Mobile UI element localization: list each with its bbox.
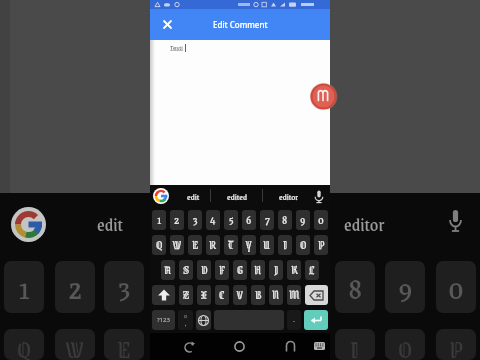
button[interactable]: 6 [242,210,256,230]
button[interactable]: editor [265,185,313,207]
button[interactable]: Y [242,235,256,255]
staticText: Z [183,286,190,304]
button[interactable]: 3 [188,210,202,230]
staticText: V [237,286,243,304]
staticText: 2 [68,263,83,312]
staticText: Q [156,236,163,254]
button[interactable]: K [287,260,301,280]
button[interactable]: edited [213,185,261,207]
button[interactable]: 9 [296,210,310,230]
button[interactable]: 0 [314,210,328,230]
button[interactable]: R [206,235,220,255]
button[interactable] [196,310,211,330]
button[interactable]: O [296,235,310,255]
staticText: 3 [193,211,198,229]
staticText: , [185,320,187,328]
button[interactable]: . [287,310,301,330]
button[interactable]: V [233,285,247,305]
button[interactable]: H [251,260,265,280]
button[interactable]: M [287,285,301,305]
staticText: W [173,236,182,254]
button[interactable]: 4 [206,210,220,230]
button[interactable]: Q [152,235,166,255]
button[interactable] [314,342,325,350]
staticText: 7 [265,211,270,229]
button[interactable]: E [188,235,202,255]
button[interactable]: A [161,260,175,280]
staticText: P [449,329,463,360]
staticText: 5 [229,211,234,229]
staticText: J [274,261,279,279]
staticText: T [228,236,234,254]
staticText: Y [246,236,252,254]
staticText: W [66,329,84,360]
staticText: Q [17,329,32,360]
staticText: Edit Comment [213,19,268,30]
button[interactable] [152,285,175,305]
staticText: N [272,286,280,304]
staticText: edit [187,190,200,203]
staticText: R [209,236,217,254]
button[interactable] [304,310,328,330]
staticText: L [309,261,315,279]
staticText: 0 [448,263,464,312]
button[interactable]: B [251,285,265,305]
button[interactable]: D [197,260,211,280]
button[interactable]: G [233,260,247,280]
button[interactable]: 1 [152,210,166,230]
button[interactable] [305,285,328,305]
button[interactable] [310,83,330,110]
button[interactable]: I [278,235,292,255]
staticText: O [398,329,413,360]
button[interactable]: Z [179,285,193,305]
staticText: Testi [170,44,183,52]
button[interactable]: S [179,260,193,280]
button[interactable]: J [269,260,283,280]
staticText: E [192,236,199,254]
staticText: P [318,236,325,254]
button[interactable] [163,20,172,29]
staticText: I [350,329,360,360]
button[interactable]: 7 [260,210,274,230]
staticText: 1 [157,211,162,229]
button[interactable]: o [178,310,193,330]
staticText: A [164,261,172,279]
button[interactable]: 2 [170,210,184,230]
staticText: E [117,329,131,360]
button[interactable]: 8 [278,210,292,230]
staticText: I [283,236,288,254]
staticText: S [183,261,190,279]
staticText: 9 [300,211,306,229]
staticText: 8 [348,263,363,312]
staticText: ?123 [157,316,170,324]
button[interactable] [285,341,296,352]
button[interactable]: 5 [224,210,238,230]
staticText: U [263,236,271,254]
button[interactable] [234,341,245,352]
staticText: 9 [398,263,413,312]
staticText: 2 [174,211,180,229]
button[interactable]: T [224,235,238,255]
staticText: C [219,286,225,304]
button[interactable]: P [314,235,328,255]
button[interactable]: N [269,285,283,305]
button[interactable]: W [170,235,184,255]
button[interactable]: U [260,235,274,255]
button[interactable]: C [215,285,229,305]
button[interactable]: X [197,285,211,305]
staticText: o [184,313,188,320]
button[interactable]: ?123 [152,310,175,330]
staticText: 4 [210,211,216,229]
staticText: H [254,261,262,279]
staticText: G [237,261,244,279]
button[interactable] [313,190,325,204]
button[interactable]: F [215,260,229,280]
staticText: 1 [18,263,31,312]
button[interactable] [183,341,195,353]
staticText: 6 [246,211,252,229]
button[interactable]: L [305,260,319,280]
staticText: 0 [318,211,324,229]
button[interactable]: edit [175,185,211,207]
staticText: editor [344,210,385,236]
